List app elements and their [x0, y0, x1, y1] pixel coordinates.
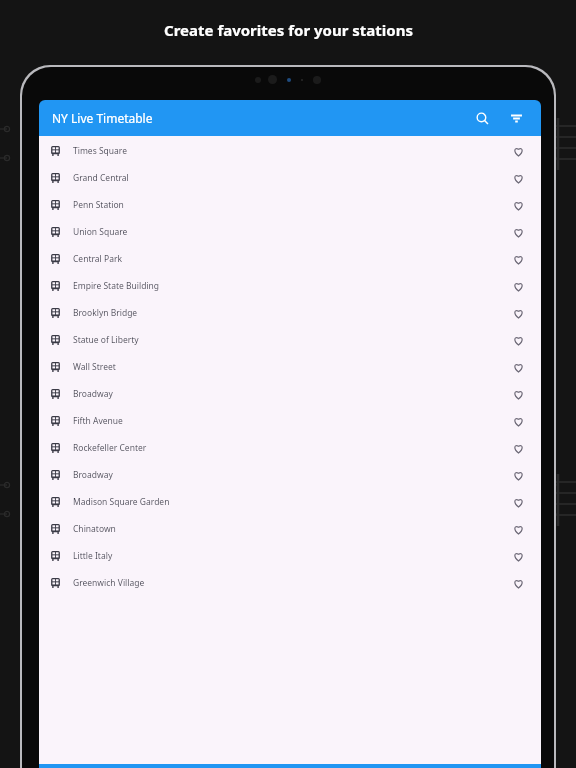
- staticText: Penn Station: [73, 199, 124, 211]
- button[interactable]: Favorite Rockefeller Center: [508, 438, 528, 458]
- staticText: Broadway: [73, 388, 113, 400]
- staticText: Create favorites for your stations: [164, 20, 413, 40]
- button[interactable]: Favorite Wall Street: [508, 357, 528, 377]
- staticText: Grand Central: [73, 172, 129, 184]
- staticText: Empire State Building: [73, 280, 160, 292]
- staticText: Wall Street: [73, 361, 116, 373]
- button[interactable]: Favorite Grand Central: [508, 168, 528, 188]
- button[interactable]: Favorite Brooklyn Bridge: [508, 303, 528, 323]
- button[interactable]: Grand Central: [39, 164, 541, 191]
- button[interactable]: Favorite Fifth Avenue: [508, 411, 528, 431]
- button[interactable]: Union Square: [39, 218, 541, 245]
- staticText: Brooklyn Bridge: [73, 307, 138, 319]
- staticText: Chinatown: [73, 523, 116, 535]
- staticText: NY Live Timetable: [52, 110, 153, 126]
- staticText: Fifth Avenue: [73, 415, 123, 427]
- button[interactable]: Fifth Avenue: [39, 407, 541, 434]
- button[interactable]: Penn Station: [39, 191, 541, 218]
- button[interactable]: Broadway: [39, 380, 541, 407]
- button[interactable]: Favorite Union Square: [508, 222, 528, 242]
- button[interactable]: Statue of Liberty: [39, 326, 541, 353]
- staticText: Madison Square Garden: [73, 496, 170, 508]
- button[interactable]: Brooklyn Bridge: [39, 299, 541, 326]
- staticText: Statue of Liberty: [73, 334, 139, 346]
- button[interactable]: Favorite Central Park: [508, 249, 528, 269]
- button[interactable]: Favorite Statue of Liberty: [508, 330, 528, 350]
- button[interactable]: Wall Street: [39, 353, 541, 380]
- button[interactable]: Times Square: [39, 137, 541, 164]
- button[interactable]: Favorite Little Italy: [508, 546, 528, 566]
- staticText: Little Italy: [73, 550, 113, 562]
- button[interactable]: Empire State Building: [39, 272, 541, 299]
- button[interactable]: Madison Square Garden: [39, 488, 541, 515]
- button[interactable]: Filter: [504, 106, 528, 130]
- button[interactable]: Greenwich Village: [39, 569, 541, 596]
- button[interactable]: Favorite Broadway: [508, 384, 528, 404]
- button[interactable]: Favorite Chinatown: [508, 519, 528, 539]
- staticText: Central Park: [73, 253, 122, 265]
- button[interactable]: Central Park: [39, 245, 541, 272]
- button[interactable]: Search: [470, 106, 494, 130]
- button[interactable]: Rockefeller Center: [39, 434, 541, 461]
- button[interactable]: Little Italy: [39, 542, 541, 569]
- staticText: Times Square: [73, 145, 127, 157]
- staticText: Greenwich Village: [73, 577, 145, 589]
- button[interactable]: Favorite Penn Station: [508, 195, 528, 215]
- button[interactable]: Favorite Madison Square Garden: [508, 492, 528, 512]
- button[interactable]: Broadway: [39, 461, 541, 488]
- staticText: Union Square: [73, 226, 128, 238]
- button[interactable]: Favorite Times Square: [508, 141, 528, 161]
- button[interactable]: Favorite Greenwich Village: [508, 573, 528, 593]
- staticText: Broadway: [73, 469, 113, 481]
- button[interactable]: Chinatown: [39, 515, 541, 542]
- staticText: Rockefeller Center: [73, 442, 147, 454]
- button[interactable]: Favorite Empire State Building: [508, 276, 528, 296]
- button[interactable]: Favorite Broadway: [508, 465, 528, 485]
